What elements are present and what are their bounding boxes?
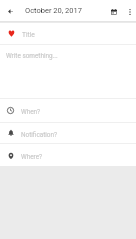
button[interactable]: Where? xyxy=(0,144,136,166)
staticText: Where? xyxy=(21,153,43,161)
button[interactable]: Navigate up xyxy=(1,2,19,20)
staticText: Title xyxy=(22,31,35,39)
button[interactable]: When? xyxy=(0,99,136,122)
staticText: When? xyxy=(21,108,41,116)
staticText: October 20, 2017 xyxy=(25,6,82,15)
button[interactable]: Choose date xyxy=(105,3,122,20)
button[interactable]: More options xyxy=(122,4,136,20)
button[interactable]: Title xyxy=(0,23,136,44)
staticText: Notification? xyxy=(21,131,58,139)
button[interactable]: Notification? xyxy=(0,123,136,143)
button[interactable]: Write something... xyxy=(0,45,136,98)
staticText: Write something... xyxy=(6,52,58,60)
